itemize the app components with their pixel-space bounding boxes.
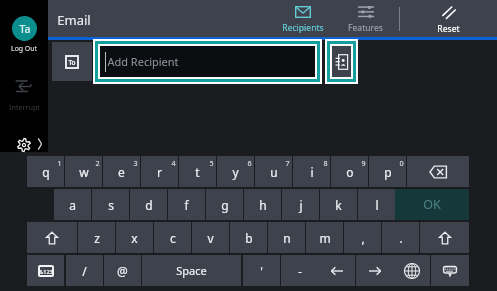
button[interactable]: -	[281, 255, 318, 286]
staticText: v	[207, 230, 214, 246]
staticText: a	[69, 197, 76, 213]
staticText: r	[157, 164, 162, 180]
button[interactable]: m	[306, 222, 343, 253]
staticText: Recipients	[282, 22, 324, 34]
button[interactable]: Add Recipient	[100, 46, 315, 77]
staticText: 5	[209, 158, 214, 168]
staticText: m	[319, 230, 331, 246]
button[interactable]: OK	[395, 189, 469, 220]
button[interactable]: Account	[12, 16, 37, 41]
button[interactable]: e	[103, 156, 140, 187]
staticText: x	[131, 230, 138, 246]
staticText: Add Recipient	[107, 54, 179, 69]
staticText: c	[170, 230, 176, 246]
button[interactable]: Right	[356, 255, 393, 286]
button[interactable]: h	[244, 189, 281, 220]
staticText: d	[145, 197, 153, 213]
button[interactable]: q	[27, 156, 64, 187]
button[interactable]: a	[54, 189, 91, 220]
staticText: h	[259, 197, 267, 213]
button[interactable]: w	[65, 156, 102, 187]
staticText: 6	[247, 158, 252, 168]
button[interactable]: Left	[318, 255, 355, 286]
button[interactable]: Backspace	[407, 156, 469, 187]
staticText: e	[118, 164, 125, 180]
button[interactable]: Reset	[425, 0, 472, 37]
button[interactable]: Symbols	[27, 255, 64, 286]
button[interactable]: @	[104, 255, 141, 286]
button[interactable]: Interrupt	[0, 102, 48, 112]
button[interactable]: Recipients	[275, 0, 330, 37]
button[interactable]: ,	[344, 222, 381, 253]
staticText: Reset	[437, 23, 460, 35]
staticText: z	[94, 230, 100, 246]
button[interactable]: u	[255, 156, 292, 187]
staticText: 7	[285, 158, 290, 168]
staticText: w	[79, 164, 89, 180]
button[interactable]: f	[168, 189, 205, 220]
button[interactable]: o	[331, 156, 368, 187]
staticText: o	[346, 164, 354, 180]
staticText: /	[82, 263, 87, 279]
button[interactable]: i	[293, 156, 330, 187]
staticText: l	[375, 197, 379, 213]
staticText: 4	[171, 158, 176, 168]
button[interactable]: Hide keyboard	[431, 255, 469, 286]
staticText: f	[184, 197, 189, 213]
staticText: &123	[39, 268, 53, 275]
staticText: OK	[423, 196, 441, 213]
staticText: .	[399, 230, 403, 246]
staticText: k	[335, 197, 342, 213]
button[interactable]: '	[243, 255, 280, 286]
button[interactable]: d	[130, 189, 167, 220]
button[interactable]: t	[179, 156, 216, 187]
staticText: -	[298, 263, 302, 279]
staticText: q	[42, 164, 50, 180]
staticText: u	[270, 164, 278, 180]
button[interactable]: Log Out	[0, 44, 48, 53]
button[interactable]: Shift	[27, 222, 77, 253]
button[interactable]: c	[154, 222, 191, 253]
button[interactable]: s	[92, 189, 129, 220]
staticText: 8	[323, 158, 328, 168]
staticText: s	[108, 197, 114, 213]
button[interactable]: Expand	[35, 136, 45, 152]
staticText: Interrupt	[9, 102, 40, 112]
staticText: To	[68, 58, 76, 67]
button[interactable]: Contacts	[332, 46, 351, 77]
button[interactable]: y	[217, 156, 254, 187]
staticText: t	[195, 164, 200, 180]
button[interactable]: /	[66, 255, 103, 286]
button[interactable]: r	[141, 156, 178, 187]
staticText: b	[245, 230, 253, 246]
staticText: p	[384, 164, 392, 180]
button[interactable]: p	[369, 156, 406, 187]
button[interactable]: Interrupt	[15, 79, 31, 94]
button[interactable]: b	[230, 222, 267, 253]
staticText: Ta	[19, 22, 31, 36]
button[interactable]: z	[78, 222, 115, 253]
button[interactable]: Shift	[420, 222, 469, 253]
staticText: 1	[57, 158, 62, 168]
button[interactable]: v	[192, 222, 229, 253]
button[interactable]: Features	[340, 0, 391, 37]
staticText: '	[260, 263, 263, 279]
button[interactable]: g	[206, 189, 243, 220]
staticText: Features	[348, 22, 383, 34]
staticText: ,	[361, 230, 365, 246]
staticText: 9	[361, 158, 366, 168]
staticText: y	[232, 164, 239, 180]
staticText: g	[221, 197, 229, 213]
button[interactable]: x	[116, 222, 153, 253]
staticText: Space	[176, 263, 207, 278]
button[interactable]: Settings	[17, 138, 31, 152]
button[interactable]: k	[320, 189, 357, 220]
button[interactable]: .	[382, 222, 419, 253]
button[interactable]: j	[282, 189, 319, 220]
button[interactable]: Language	[393, 255, 430, 286]
button[interactable]: n	[268, 222, 305, 253]
staticText: n	[283, 230, 291, 246]
button[interactable]: Space	[142, 255, 241, 286]
button[interactable]: l	[358, 189, 395, 220]
button[interactable]: To	[52, 42, 92, 81]
